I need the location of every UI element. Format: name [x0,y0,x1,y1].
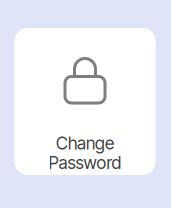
staticText: Change [56,133,114,154]
button[interactable]: Change Password [14,28,155,175]
staticText: Password [48,152,121,173]
